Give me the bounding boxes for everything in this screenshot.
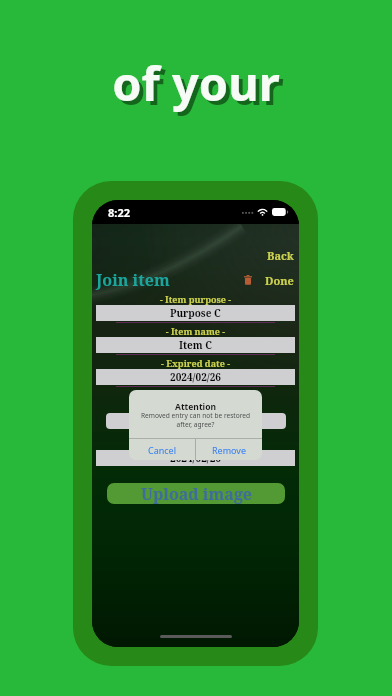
button[interactable]: Back xyxy=(262,247,299,264)
staticText: Attention xyxy=(129,401,262,413)
staticText: of your xyxy=(4,55,392,119)
staticText: Cancel xyxy=(148,444,177,456)
staticText: Removed entry can not be restored after,… xyxy=(129,411,262,429)
staticText: Item C xyxy=(179,338,212,352)
staticText: Join item xyxy=(96,269,170,291)
staticText: - Item purpose - xyxy=(92,293,299,305)
staticText: Remove xyxy=(212,444,247,456)
button[interactable]: Upload image xyxy=(107,483,285,504)
staticText: Done xyxy=(265,273,294,288)
staticText: of your xyxy=(0,51,392,115)
button[interactable]: 2024/02/26 xyxy=(96,450,295,466)
button[interactable]: 2024/02/26 xyxy=(96,369,295,385)
button[interactable]: Remove xyxy=(196,439,262,460)
button[interactable]: Done xyxy=(260,273,299,288)
staticText: - Item name - xyxy=(92,325,299,337)
button[interactable]: Cancel xyxy=(129,439,195,460)
staticText: Upload image xyxy=(141,483,252,504)
button[interactable] xyxy=(106,413,286,429)
staticText: 2024/02/26 xyxy=(170,451,221,465)
staticText: 2024/02/26 xyxy=(170,370,221,384)
button[interactable]: Purpose C xyxy=(96,305,295,321)
staticText: 8:22 xyxy=(108,205,130,220)
staticText: - Expired date - xyxy=(92,357,299,369)
button[interactable]: Item C xyxy=(96,337,295,353)
staticText: Purpose C xyxy=(170,306,221,320)
button[interactable]: Delete xyxy=(242,273,254,287)
staticText: Back xyxy=(267,248,294,263)
